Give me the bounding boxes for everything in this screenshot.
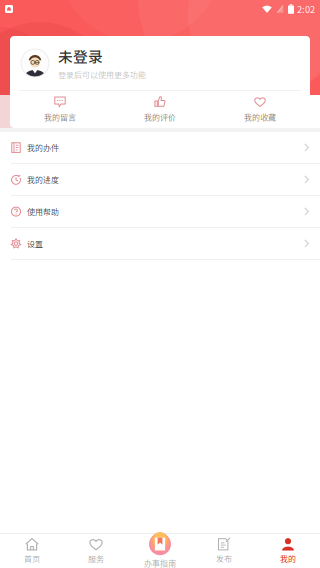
button[interactable]: 使用帮助: [0, 196, 320, 228]
staticText: 我的进度: [27, 174, 59, 185]
button[interactable]: 设置: [0, 228, 320, 260]
staticText: 登录后可以使用更多功能: [58, 69, 146, 80]
button[interactable]: 我的进度: [0, 164, 320, 196]
button[interactable]: 我的留言: [10, 90, 110, 129]
staticText: 设置: [27, 238, 43, 249]
staticText: 我的: [280, 553, 296, 564]
staticText: 首页: [24, 553, 40, 564]
button[interactable]: 我的评价: [110, 90, 210, 129]
staticText: 我的收藏: [244, 111, 276, 123]
staticText: 我的评价: [144, 111, 176, 123]
button[interactable]: 我的办件: [0, 132, 320, 164]
button[interactable]: 发布: [192, 534, 256, 568]
button[interactable]: 服务: [64, 534, 128, 568]
button[interactable]: 我的收藏: [210, 90, 310, 129]
button[interactable]: 我的: [256, 534, 320, 568]
staticText: 使用帮助: [27, 206, 59, 217]
staticText: 发布: [216, 553, 232, 564]
staticText: 服务: [88, 553, 104, 564]
staticText: 2:02: [297, 2, 315, 16]
button[interactable]: 首页: [0, 534, 64, 568]
staticText: 未登录: [58, 46, 103, 67]
staticText: 办事指南: [144, 557, 176, 568]
staticText: 我的办件: [27, 142, 59, 153]
staticText: 我的留言: [44, 111, 76, 123]
button[interactable]: 办事指南: [128, 534, 192, 568]
